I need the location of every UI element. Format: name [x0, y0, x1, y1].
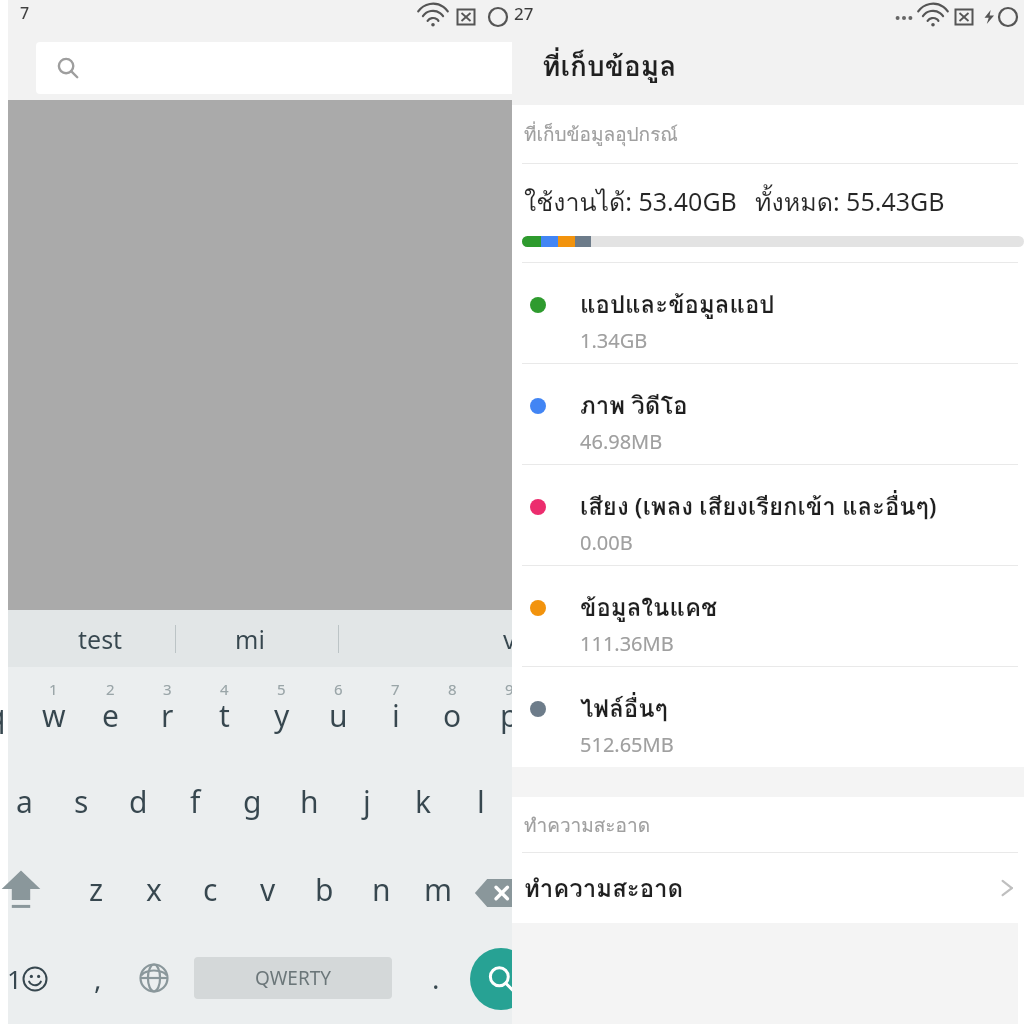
staticText: 111.36MB	[580, 630, 674, 657]
button[interactable]: l	[452, 765, 509, 843]
staticText: 6	[334, 679, 343, 699]
staticText: u	[329, 695, 348, 736]
staticText: 4	[220, 679, 229, 699]
button[interactable]: mi	[235, 622, 265, 656]
button[interactable]: c	[182, 853, 239, 931]
staticText: ไฟล์อื่นๆ	[580, 689, 668, 727]
staticText: 3	[163, 679, 172, 699]
button[interactable]: 1	[25, 667, 82, 755]
staticText: ใช้งานได้: 53.40GB	[524, 182, 737, 222]
staticText: c	[203, 869, 218, 910]
button[interactable]: v	[239, 853, 296, 931]
button[interactable]: Search	[470, 948, 532, 1010]
staticText: h	[300, 781, 319, 822]
staticText: ,	[94, 959, 102, 997]
staticText: m	[424, 869, 453, 910]
button[interactable]: ,	[70, 943, 126, 1013]
staticText: แอปและข้อมูลแอป	[580, 285, 775, 323]
staticText: f	[190, 781, 201, 822]
button[interactable]: n	[353, 853, 410, 931]
other: Search icon	[56, 56, 80, 80]
staticText: v	[260, 869, 276, 910]
button[interactable]: f	[167, 765, 224, 843]
button[interactable]: 4	[196, 667, 253, 755]
button[interactable]: เสียง (เพลง เสียงเรียกเข้า และอื่นๆ)	[512, 465, 1024, 565]
staticText: l	[477, 781, 485, 822]
button[interactable]: 3	[139, 667, 196, 755]
staticText: เสียง (เพลง เสียงเรียกเข้า และอื่นๆ)	[580, 487, 937, 525]
staticText: 0.00B	[580, 529, 633, 556]
staticText: i	[392, 695, 400, 736]
staticText: r	[161, 695, 174, 736]
staticText: ทั้งหมด: 55.43GB	[755, 182, 945, 222]
staticText: t	[219, 695, 230, 736]
staticText: 46.98MB	[580, 428, 663, 455]
staticText: a	[16, 781, 33, 822]
staticText: n	[372, 869, 391, 910]
staticText: ข้อมูลในแคช	[580, 588, 718, 626]
button[interactable]: a	[0, 765, 53, 843]
button[interactable]: m	[410, 853, 467, 931]
staticText: .	[432, 959, 440, 997]
staticText: w	[42, 695, 66, 736]
button[interactable]: Emoji	[0, 943, 62, 1013]
staticText: 8	[448, 679, 457, 699]
staticText: ที่เก็บข้อมูลอุปกรณ์	[524, 119, 678, 149]
staticText: e	[102, 695, 119, 736]
staticText: d	[129, 781, 148, 822]
staticText: k	[415, 781, 432, 822]
staticText: y	[274, 695, 290, 736]
staticText: 5	[277, 679, 286, 699]
button[interactable]: QWERTY	[194, 957, 392, 999]
button[interactable]: 6	[310, 667, 367, 755]
button[interactable]: Shift	[0, 853, 56, 931]
button[interactable]: .	[408, 943, 464, 1013]
staticText: s	[74, 781, 89, 822]
staticText: g	[243, 781, 262, 822]
staticText: q	[0, 695, 6, 736]
staticText: QWERTY	[255, 965, 332, 991]
button[interactable]: k	[395, 765, 452, 843]
button[interactable]: ไฟล์อื่นๆ	[512, 667, 1024, 767]
button[interactable]: Change language	[126, 943, 182, 1013]
staticText: 9	[505, 679, 514, 699]
staticText: ที่เก็บข้อมูล	[542, 44, 677, 89]
staticText: 7	[20, 2, 30, 24]
button[interactable]: ภาพ วิดีโอ	[512, 364, 1024, 464]
button[interactable]: g	[224, 765, 281, 843]
button[interactable]: 8	[424, 667, 481, 755]
button[interactable]: 5	[253, 667, 310, 755]
staticText: ภาพ วิดีโอ	[580, 386, 688, 424]
button[interactable]: Backspace	[474, 853, 534, 931]
staticText: x	[146, 869, 162, 910]
button[interactable]: d	[110, 765, 167, 843]
staticText: p	[500, 695, 519, 736]
staticText: v	[503, 622, 516, 656]
button[interactable]: Search	[36, 42, 540, 94]
staticText: j	[363, 781, 371, 822]
staticText: 512.65MB	[580, 731, 674, 758]
button[interactable]: j	[338, 765, 395, 843]
button[interactable]: z	[68, 853, 125, 931]
button[interactable]: 7	[367, 667, 424, 755]
button[interactable]: q	[0, 667, 25, 755]
button[interactable]: s	[53, 765, 110, 843]
staticText: z	[89, 869, 104, 910]
button[interactable]: ใช้งานได้: 53.40GB	[512, 164, 1024, 262]
button[interactable]: test	[78, 622, 123, 656]
staticText: 27	[514, 2, 534, 25]
button[interactable]: ทำความสะอาด	[512, 853, 1024, 923]
button[interactable]: แอปและข้อมูลแอป	[512, 263, 1024, 363]
button[interactable]: b	[296, 853, 353, 931]
button[interactable]: 9	[481, 667, 538, 755]
button[interactable]: 2	[82, 667, 139, 755]
button[interactable]: ข้อมูลในแคช	[512, 566, 1024, 666]
staticText: 7	[391, 679, 400, 699]
staticText: ทำความสะอาด	[524, 810, 650, 840]
staticText: o	[443, 695, 462, 736]
staticText: ทำความสะอาด	[524, 869, 684, 907]
staticText: 1	[7, 961, 22, 996]
staticText: 1	[49, 679, 58, 699]
button[interactable]: h	[281, 765, 338, 843]
button[interactable]: x	[125, 853, 182, 931]
